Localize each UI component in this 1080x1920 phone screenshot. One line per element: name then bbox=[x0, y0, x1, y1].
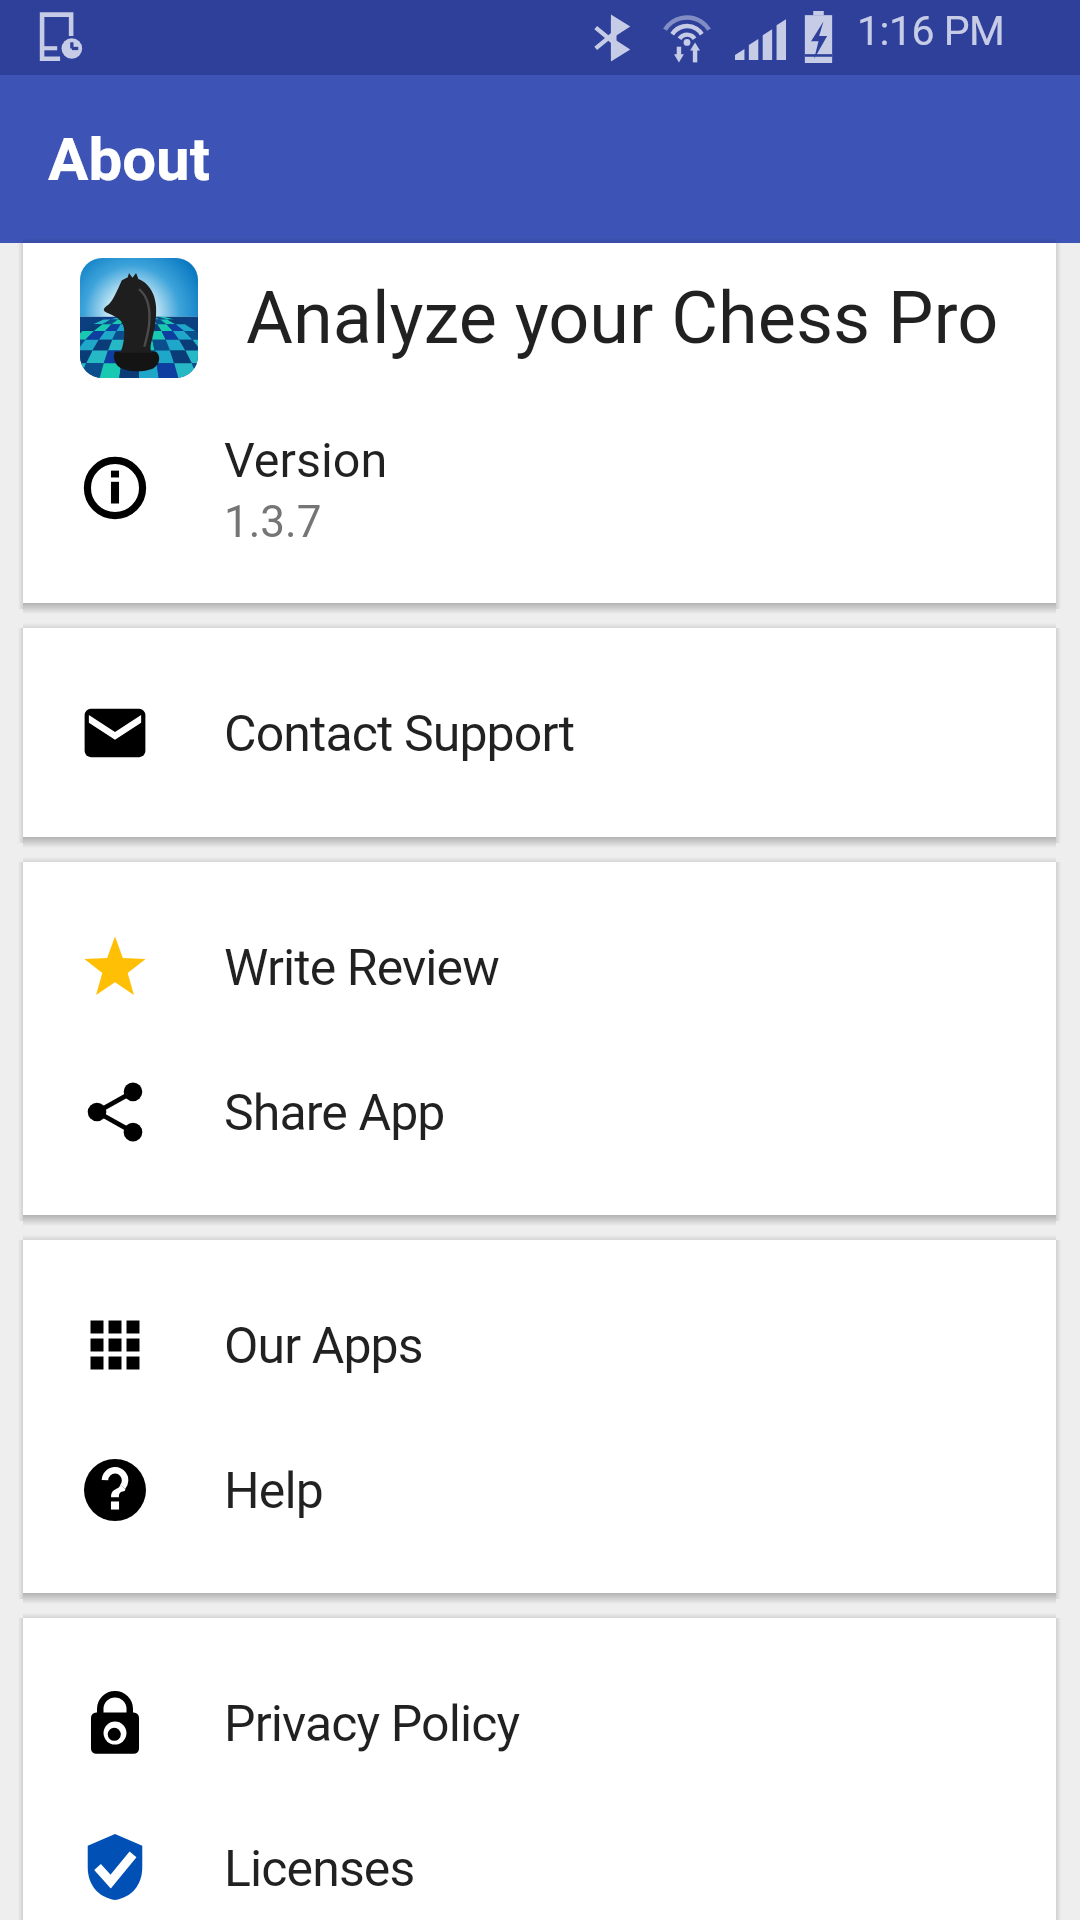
button[interactable]: Contact Support bbox=[23, 660, 1056, 805]
staticText: Help bbox=[224, 1462, 323, 1521]
button[interactable]: Privacy Policy bbox=[23, 1650, 1056, 1795]
staticText: Contact Support bbox=[224, 705, 575, 764]
staticText: About bbox=[48, 124, 210, 194]
staticText: Our Apps bbox=[224, 1317, 423, 1376]
staticText: Licenses bbox=[224, 1840, 415, 1899]
button[interactable]: Share App bbox=[23, 1039, 1056, 1184]
other: Alarm bbox=[38, 12, 86, 60]
staticText: 1:16 PM bbox=[857, 7, 1005, 55]
staticText: Version bbox=[224, 432, 388, 489]
button[interactable]: Help bbox=[23, 1417, 1056, 1562]
button[interactable]: Our Apps bbox=[23, 1272, 1056, 1417]
staticText: 1.3.7 bbox=[224, 496, 322, 548]
staticText: Write Review bbox=[224, 939, 499, 998]
staticText: Privacy Policy bbox=[224, 1695, 520, 1754]
staticText: Share App bbox=[224, 1084, 445, 1143]
button[interactable]: Version bbox=[23, 411, 1056, 556]
button[interactable]: Write Review bbox=[23, 894, 1056, 1039]
button[interactable]: Licenses bbox=[23, 1795, 1056, 1920]
staticText: Analyze your Chess Pro bbox=[246, 276, 999, 360]
